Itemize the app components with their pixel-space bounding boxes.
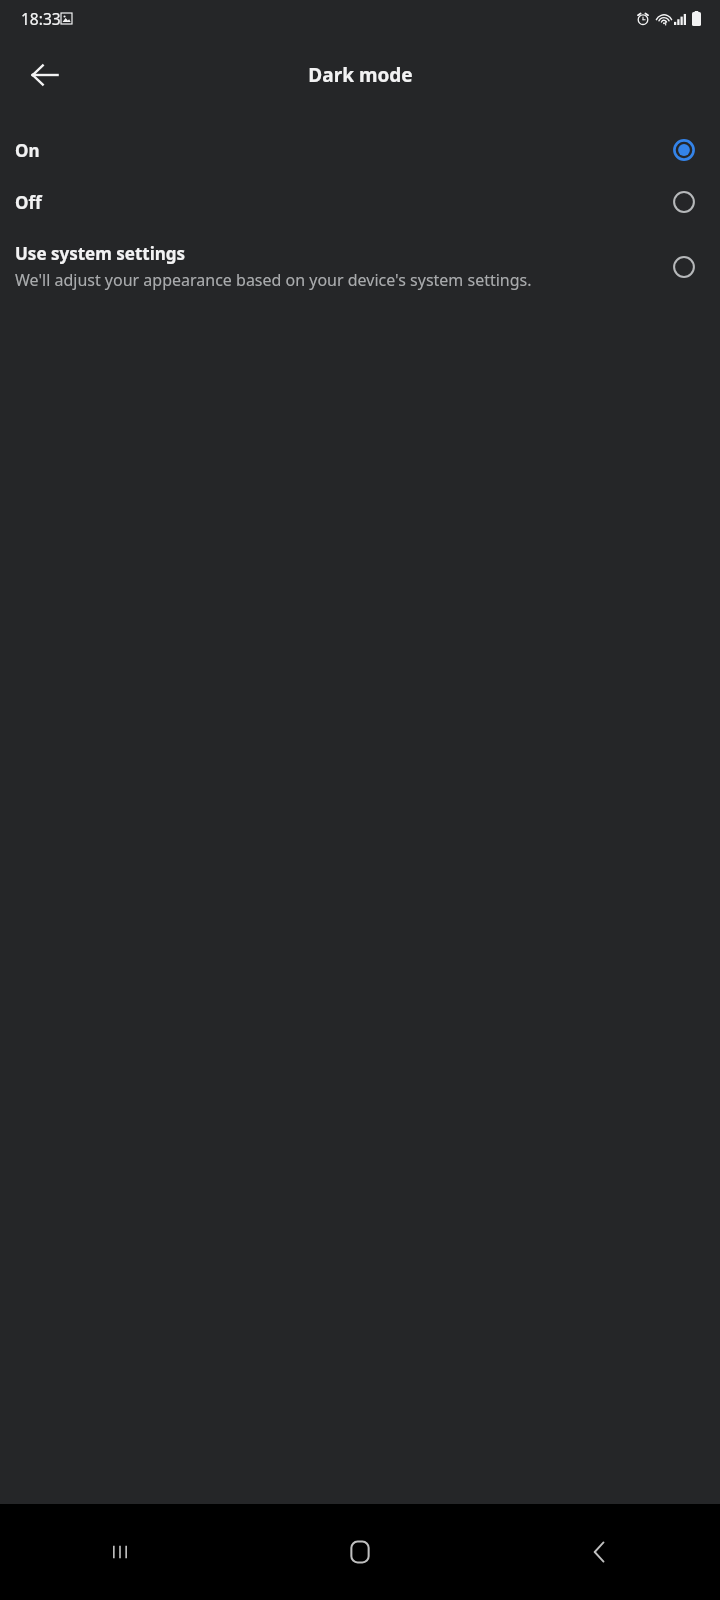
staticText: We'll adjust your appearance based on yo… — [15, 269, 532, 291]
staticText: On — [15, 139, 40, 162]
button[interactable]: Use system settings — [0, 228, 720, 305]
button[interactable]: On — [0, 124, 720, 176]
button[interactable]: Home — [240, 1504, 480, 1600]
staticText: Dark mode — [308, 62, 413, 88]
staticText: Use system settings — [15, 242, 186, 265]
staticText: 18:33 — [21, 8, 61, 29]
button[interactable]: Recents — [0, 1504, 240, 1600]
button[interactable]: Back — [14, 44, 76, 106]
button[interactable]: Back — [480, 1504, 720, 1600]
staticText: Off — [15, 191, 42, 214]
button[interactable]: Off — [0, 176, 720, 228]
